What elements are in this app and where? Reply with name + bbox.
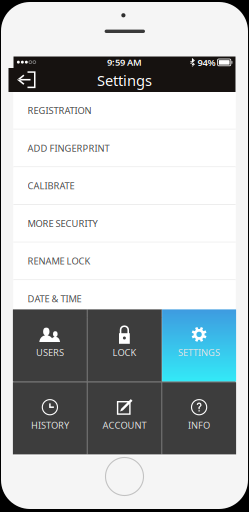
staticText: DATE & TIME (27, 292, 81, 305)
button[interactable]: MORE SECURITY (13, 205, 235, 242)
staticText: INFO (188, 419, 210, 431)
staticText: HISTORY (31, 419, 69, 431)
button[interactable]: SETTINGS (162, 309, 236, 382)
staticText: LOCK (112, 346, 136, 359)
button[interactable]: LOCK (87, 309, 161, 382)
staticText: REGISTRATION (27, 104, 91, 117)
staticText: 9:59 AM (107, 56, 142, 68)
button[interactable]: USERS (13, 309, 87, 382)
staticText: USERS (36, 346, 64, 359)
staticText: RENAME LOCK (27, 255, 90, 267)
staticText: CALIBRATE (27, 179, 74, 192)
button[interactable]: Back (8, 68, 44, 92)
button[interactable]: REGISTRATION (13, 92, 235, 129)
staticText: Settings (97, 71, 152, 90)
button[interactable]: CALIBRATE (13, 167, 235, 204)
staticText: ACCOUNT (102, 419, 146, 431)
button[interactable]: DATE & TIME (13, 280, 235, 317)
staticText: ADD FINGERPRINT (27, 142, 109, 154)
button[interactable]: INFO (162, 382, 236, 454)
button[interactable]: ADD FINGERPRINT (13, 130, 235, 166)
staticText: MORE SECURITY (27, 217, 97, 229)
button[interactable]: HISTORY (13, 382, 87, 454)
staticText: SETTINGS (178, 346, 220, 359)
staticText: 94% (197, 56, 215, 69)
button[interactable]: RENAME LOCK (13, 243, 235, 279)
button[interactable]: ACCOUNT (87, 382, 161, 454)
